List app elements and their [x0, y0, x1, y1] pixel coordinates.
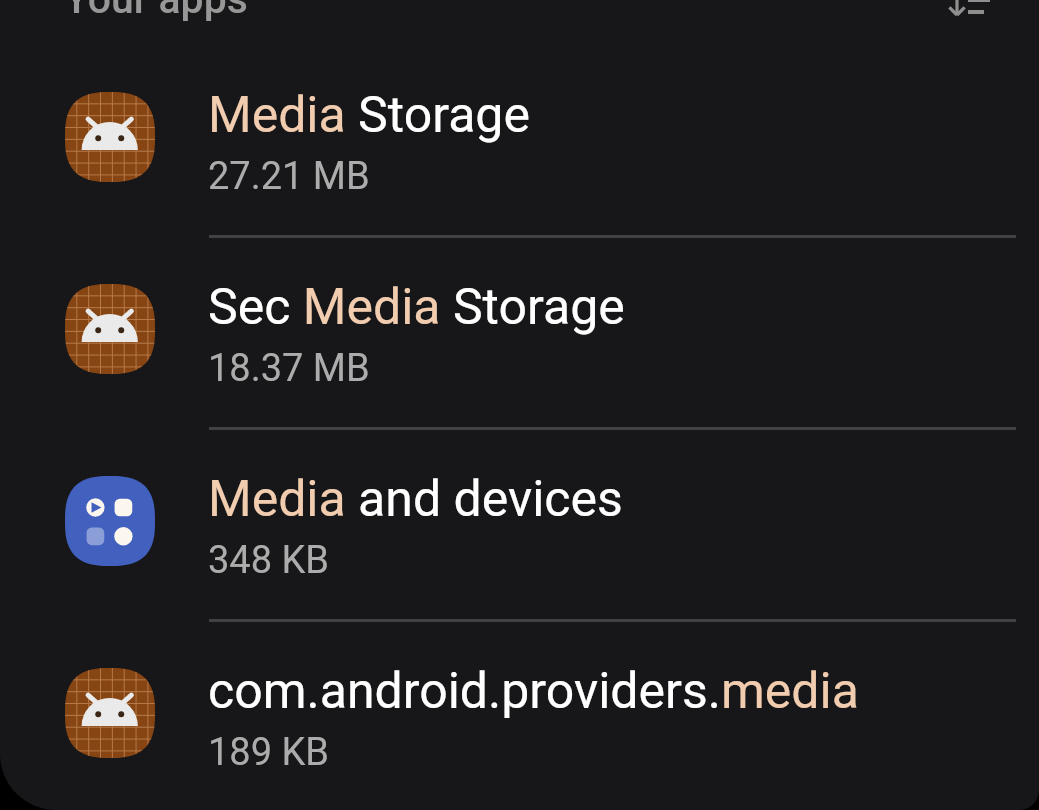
button[interactable]: Media Storage [0, 44, 1039, 236]
staticText: 18.37 MB [208, 346, 370, 391]
staticText: 27.21 MB [208, 154, 370, 199]
staticText: 189 KB [208, 730, 330, 775]
button[interactable]: com.android.providers.media [0, 620, 1039, 810]
button[interactable]: Sec Media Storage [0, 236, 1039, 428]
staticText: com.android.providers.media [208, 662, 859, 721]
staticText: Sec Media Storage [208, 278, 625, 337]
staticText: Media and devices [208, 470, 623, 529]
staticText: Media Storage [208, 86, 530, 145]
button[interactable]: Media and devices [0, 428, 1039, 620]
staticText: Your apps [64, 0, 248, 23]
staticText: 348 KB [208, 538, 330, 583]
button[interactable]: Sort [931, 0, 1003, 28]
